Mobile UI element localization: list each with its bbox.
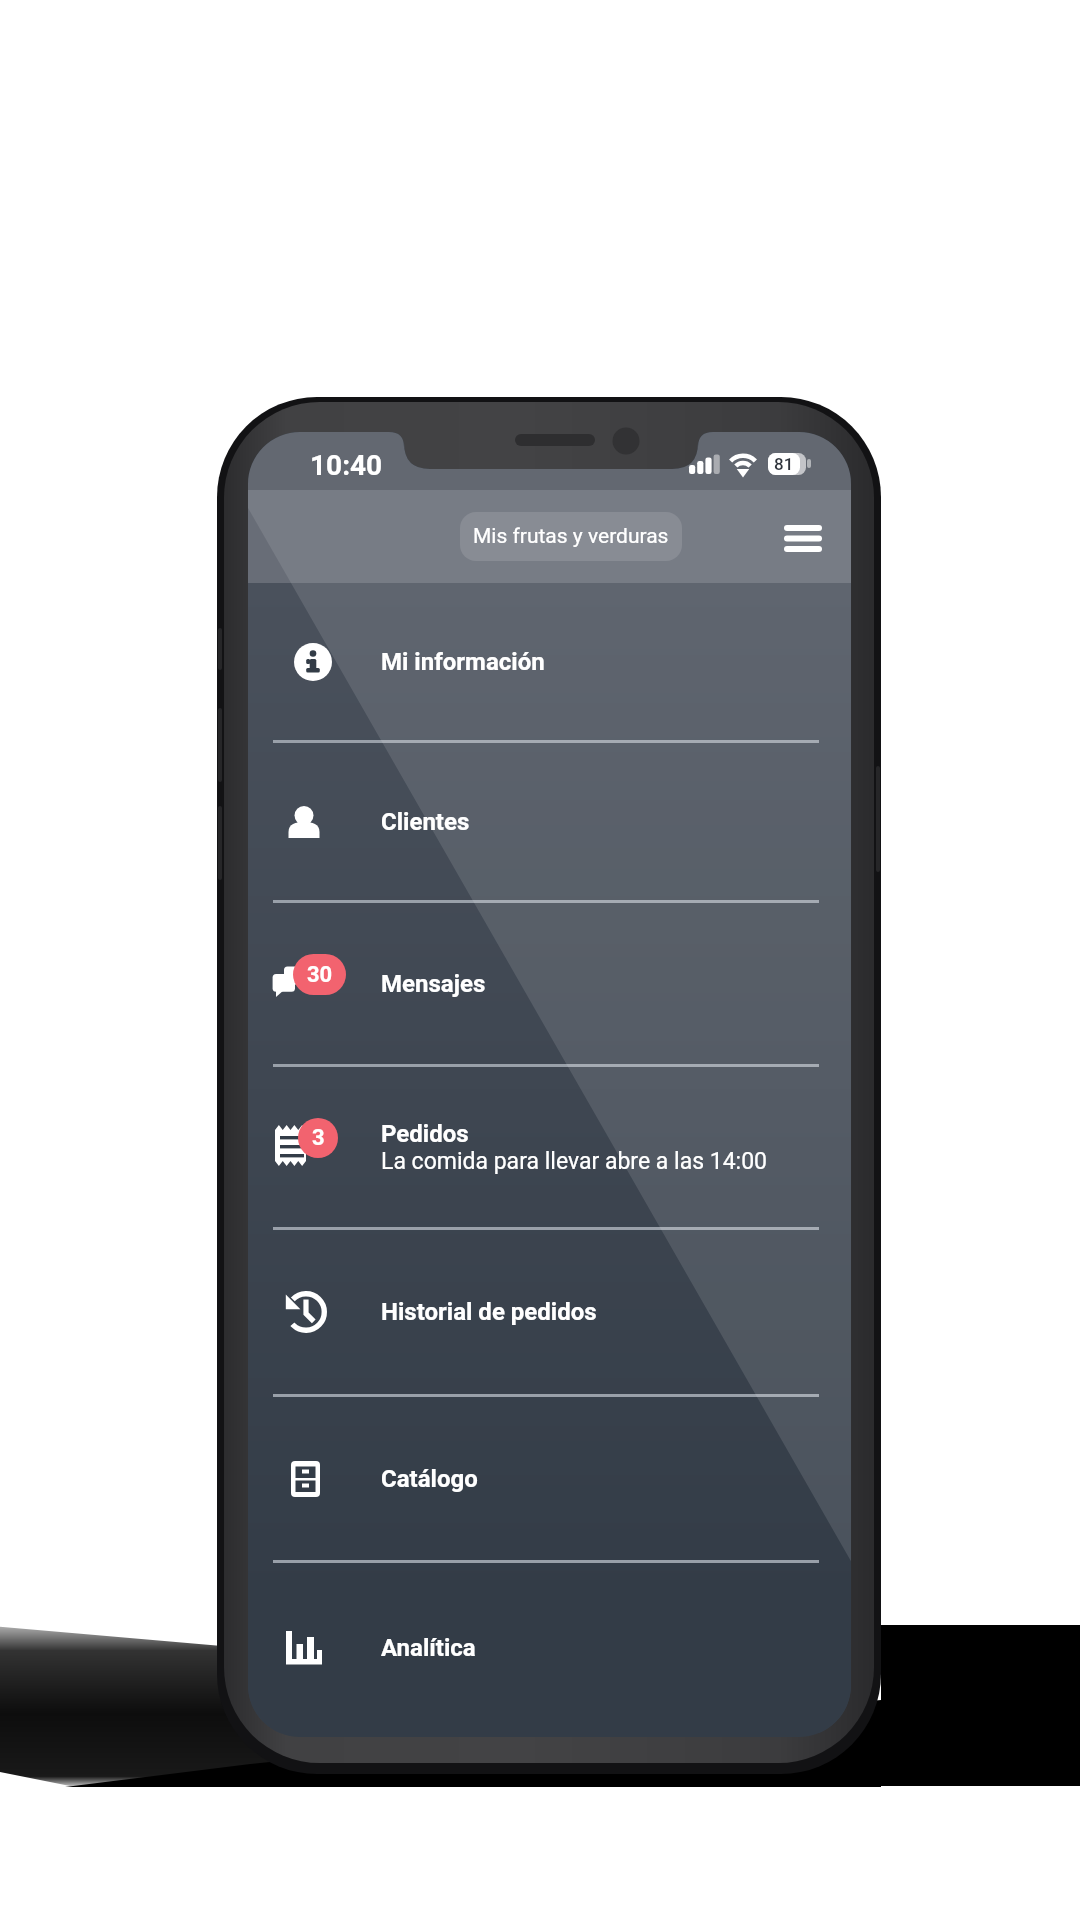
button[interactable]: 30 xyxy=(248,903,851,1064)
staticText: 30 xyxy=(307,962,333,988)
staticText: Analítica xyxy=(381,1634,476,1662)
button[interactable]: Analítica xyxy=(248,1563,851,1733)
staticText: 3 xyxy=(312,1125,325,1151)
button[interactable]: Historial de pedidos xyxy=(248,1230,851,1394)
staticText: 10:40 xyxy=(310,449,383,482)
button[interactable]: Mi información xyxy=(248,583,851,740)
button[interactable]: Mis frutas y verduras xyxy=(460,512,682,561)
button[interactable]: 3 xyxy=(248,1067,851,1227)
staticText: La comida para llevar abre a las 14:00 xyxy=(381,1148,767,1175)
button[interactable]: Catálogo xyxy=(248,1397,851,1560)
button[interactable]: Clientes xyxy=(248,743,851,900)
staticText: 81 xyxy=(774,454,794,474)
staticText: Pedidos xyxy=(381,1120,469,1148)
staticText: Historial de pedidos xyxy=(381,1298,597,1326)
button[interactable]: Menu xyxy=(768,502,838,572)
staticText: Clientes xyxy=(381,808,470,836)
staticText: Mis frutas y verduras xyxy=(473,524,669,549)
staticText: Catálogo xyxy=(381,1465,478,1493)
staticText: Mensajes xyxy=(381,970,486,998)
staticText: Mi información xyxy=(381,648,545,676)
